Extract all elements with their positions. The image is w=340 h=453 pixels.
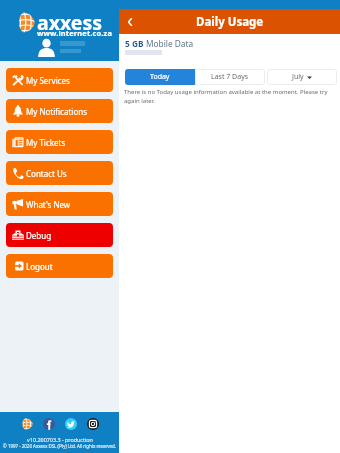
- button[interactable]: Logout: [6, 254, 113, 278]
- button[interactable]: Back: [119, 11, 141, 33]
- staticText: There is no Today usage information avai…: [124, 88, 336, 104]
- button[interactable]: Twitter: [65, 418, 77, 430]
- staticText: My Notifications: [26, 106, 87, 117]
- button[interactable]: What's New: [6, 192, 113, 216]
- button[interactable]: My Notifications: [6, 99, 113, 123]
- staticText: What's New: [26, 199, 71, 210]
- staticText: Today: [150, 72, 170, 82]
- staticText: 5 GB: [125, 38, 144, 49]
- staticText: Mobile Data: [146, 38, 194, 49]
- button[interactable]: July: [267, 69, 337, 85]
- button[interactable]: Debug: [6, 223, 113, 247]
- button[interactable]: Instagram: [87, 418, 99, 430]
- button[interactable]: Today: [125, 69, 195, 85]
- staticText: Daily Usage: [196, 14, 264, 30]
- staticText: Logout: [26, 261, 53, 272]
- button[interactable]: My Services: [6, 68, 113, 92]
- button[interactable]: Contact Us: [6, 161, 113, 185]
- staticText: Contact Us: [26, 168, 67, 179]
- button[interactable]: Facebook: [43, 418, 55, 430]
- staticText: www.internet.co.za: [37, 28, 113, 38]
- staticText: v10.200703.3 - production: [27, 436, 93, 443]
- staticText: axxess: [37, 9, 103, 36]
- button[interactable]: My Tickets: [6, 130, 113, 154]
- button[interactable]: Last 7 Days: [195, 69, 265, 85]
- staticText: My Tickets: [26, 137, 66, 148]
- button[interactable]: Axxess website: [21, 418, 33, 430]
- staticText: Debug: [26, 230, 52, 241]
- staticText: © 1997 - 2020 Axxess DSL (Pty) Ltd. All …: [3, 443, 116, 449]
- staticText: July: [292, 72, 304, 82]
- staticText: Last 7 Days: [211, 72, 249, 82]
- staticText: My Services: [26, 75, 70, 86]
